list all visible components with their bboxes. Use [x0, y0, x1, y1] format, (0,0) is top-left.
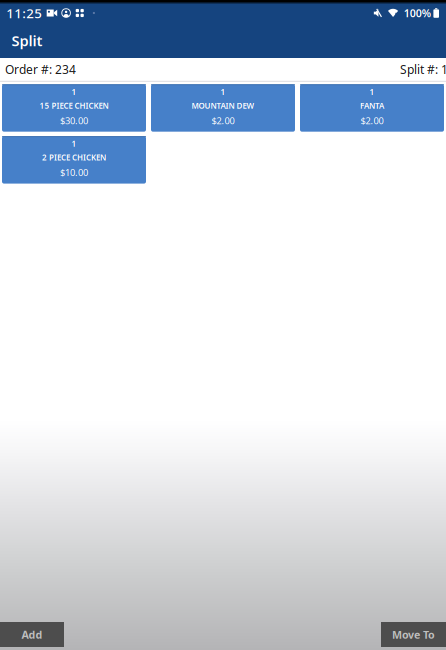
- staticText: Move To: [392, 627, 435, 642]
- staticText: 15 PIECE CHICKEN: [39, 100, 108, 111]
- staticText: FANTA: [360, 100, 384, 111]
- button[interactable]: 1: [2, 136, 146, 184]
- staticText: $10.00: [60, 166, 88, 179]
- button[interactable]: 1: [151, 84, 295, 132]
- staticText: 11:25: [6, 4, 42, 22]
- staticText: Split #: 1: [400, 61, 446, 77]
- staticText: $2.00: [360, 114, 383, 127]
- staticText: Order #: 234: [5, 61, 76, 77]
- staticText: 1: [71, 86, 76, 97]
- button[interactable]: 1: [2, 84, 146, 132]
- staticText: 1: [71, 138, 76, 149]
- staticText: 1: [369, 86, 374, 97]
- staticText: 100%: [404, 6, 431, 20]
- staticText: Add: [21, 627, 42, 642]
- staticText: Split: [11, 31, 42, 50]
- staticText: 1: [220, 86, 225, 97]
- staticText: $30.00: [60, 114, 88, 127]
- button[interactable]: 1: [300, 84, 444, 132]
- staticText: MOUNTAIN DEW: [191, 100, 254, 111]
- button[interactable]: Move To: [381, 622, 446, 647]
- staticText: 2 PIECE CHICKEN: [42, 152, 106, 163]
- staticText: $2.00: [211, 114, 234, 127]
- button[interactable]: Add: [0, 622, 64, 647]
